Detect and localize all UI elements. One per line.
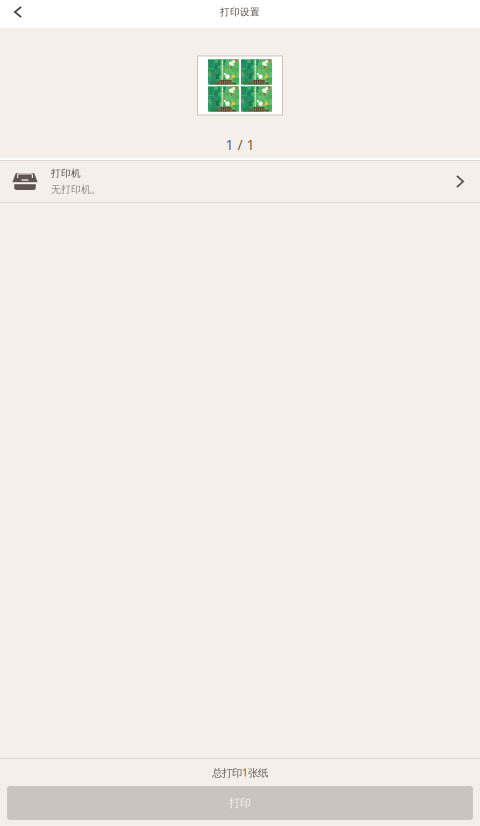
staticText: 无打印机。 xyxy=(51,183,101,196)
button[interactable]: 打印 xyxy=(0,786,480,820)
staticText: 打印机 xyxy=(51,167,81,179)
button[interactable]: Back xyxy=(0,0,36,24)
staticText: 打印 xyxy=(229,796,251,810)
staticText: 1 / 1 xyxy=(225,135,254,154)
staticText: 总打印1张纸 xyxy=(212,765,268,780)
button[interactable]: 打印机 xyxy=(0,161,480,202)
staticText: 打印设置 xyxy=(220,6,260,18)
